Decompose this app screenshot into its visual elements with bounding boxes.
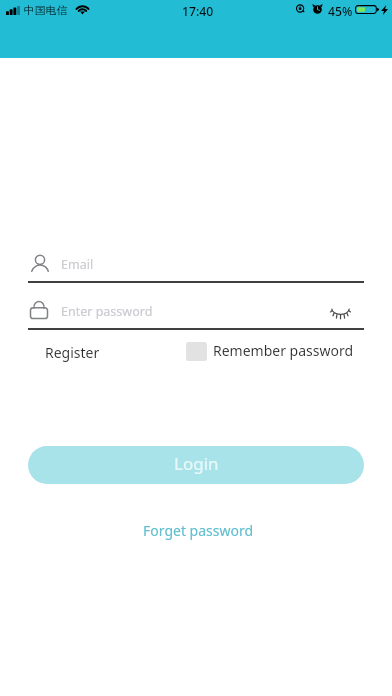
staticText: 中国电信 bbox=[24, 4, 68, 18]
button[interactable]: Login bbox=[28, 446, 364, 484]
staticText: 45% bbox=[328, 3, 353, 20]
button[interactable]: Forget password bbox=[137, 515, 260, 546]
staticText: Remember password bbox=[213, 341, 354, 360]
button[interactable]: Show password bbox=[320, 302, 360, 324]
button[interactable]: Register bbox=[29, 339, 116, 366]
staticText: Login bbox=[174, 452, 219, 475]
staticText: 17:40 bbox=[182, 3, 214, 20]
button[interactable]: Enter password bbox=[28, 299, 364, 329]
button[interactable]: Remember password bbox=[186, 341, 358, 360]
staticText: Enter password bbox=[61, 303, 153, 320]
staticText: Email bbox=[61, 256, 94, 273]
button[interactable]: Email bbox=[28, 252, 364, 282]
staticText: Register bbox=[45, 343, 100, 362]
